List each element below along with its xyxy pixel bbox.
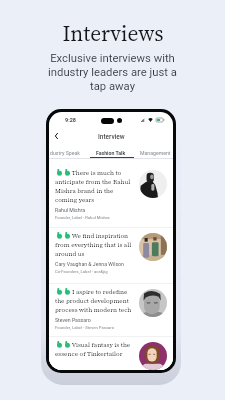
staticText: Interviews [62, 19, 164, 48]
staticText: Founder, Label - Rahul Mishra [55, 215, 110, 220]
button[interactable]: Management [140, 148, 173, 157]
staticText: Interview [98, 133, 125, 141]
staticText: Management [140, 150, 171, 156]
button[interactable]: There is much to anticipate from the Rah… [49, 165, 173, 227]
staticText: There is much to anticipate from the Rah… [55, 168, 131, 204]
staticText: dustry Speak [50, 150, 80, 156]
button[interactable]: Back [50, 129, 63, 142]
staticText: Exclusive interviews with industry leade… [48, 52, 177, 93]
button[interactable]: I aspire to redefine the product develop… [49, 284, 173, 336]
staticText: Co-Founders, Label - ace&jig [55, 269, 108, 274]
staticText: Steven Passaro [55, 317, 91, 323]
staticText: Rahul Mishra [55, 207, 86, 213]
button[interactable]: dustry Speak [50, 148, 83, 157]
button[interactable]: We find inspiration from everything that… [49, 228, 173, 283]
staticText: Fashion Talk [96, 150, 126, 156]
staticText: Cary Vaughan & Jenna Wilson [55, 261, 124, 267]
staticText: Founder, Label - Steven Passaro [55, 325, 115, 330]
staticText: Visual fantasy is the essence of Tinkert… [55, 340, 131, 358]
button[interactable]: Visual fantasy is the essence of Tinkert… [49, 337, 173, 370]
staticText: 9:28 [65, 117, 77, 123]
staticText: We find inspiration from everything that… [55, 231, 132, 258]
button[interactable]: Fashion Talk [96, 148, 126, 157]
staticText: I aspire to redefine the product develop… [55, 287, 132, 314]
